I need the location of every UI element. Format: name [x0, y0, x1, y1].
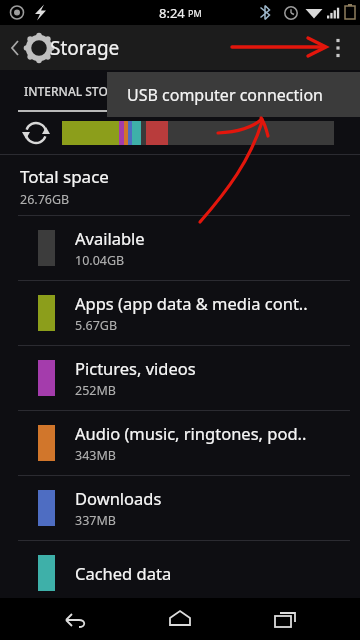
staticText: Total space	[20, 165, 109, 188]
staticText: Available	[75, 227, 145, 249]
button[interactable]: Storage	[6, 25, 360, 70]
staticText: 337MB	[75, 512, 116, 529]
staticText: Cached data	[75, 562, 172, 584]
button[interactable]: More options	[316, 25, 360, 70]
staticText: INTERNAL STORAGE	[24, 83, 139, 99]
staticText: Storage	[50, 35, 120, 61]
button[interactable]: Home	[150, 598, 210, 640]
staticText: 252MB	[75, 382, 116, 399]
button[interactable]: INTERNAL STORAGE	[24, 70, 139, 112]
staticText: Audio (music, ringtones, pod..	[75, 422, 307, 444]
button[interactable]: Total space	[0, 155, 360, 215]
button[interactable]: Downloads	[0, 476, 360, 540]
button[interactable]: USB computer connection	[107, 72, 360, 117]
button[interactable]: Refresh	[22, 119, 50, 147]
staticText: 8:24	[159, 4, 185, 22]
staticText: Pictures, videos	[75, 357, 196, 379]
staticText: Downloads	[75, 487, 162, 509]
staticText: 343MB	[75, 447, 116, 464]
button[interactable]: Cached data	[0, 541, 360, 605]
button[interactable]: Apps (app data & media cont..	[0, 281, 360, 345]
staticText: USB computer connection	[127, 84, 323, 106]
button[interactable]: Back	[45, 598, 105, 640]
staticText: PM	[188, 7, 202, 19]
button[interactable]: Recents	[255, 598, 315, 640]
staticText: 5.67GB	[75, 317, 118, 334]
button[interactable]: Available	[0, 216, 360, 280]
button[interactable]: Pictures, videos	[0, 346, 360, 410]
staticText: 10.04GB	[75, 252, 125, 269]
button[interactable]: Audio (music, ringtones, pod..	[0, 411, 360, 475]
staticText: Apps (app data & media cont..	[75, 292, 308, 314]
staticText: 26.76GB	[20, 191, 70, 208]
